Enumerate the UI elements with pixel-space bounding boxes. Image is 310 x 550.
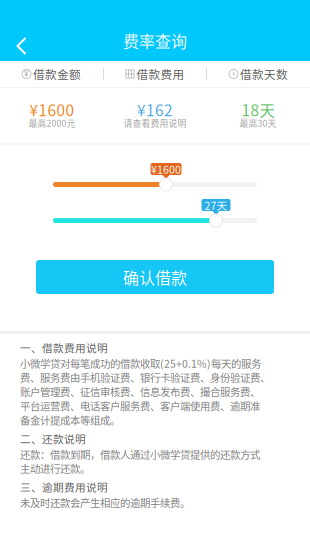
staticText: 费、服务费由手机验证费、银行卡验证费、身份验证费、 (20, 370, 270, 385)
staticText: 小微学贷对每笔成功的借款收取(25+0.1%)每天的服务 (20, 356, 261, 371)
staticText: ¥1600 (151, 161, 181, 177)
staticText: 借款天数 (240, 66, 288, 82)
staticText: 备金计提成本等组成。 (20, 412, 120, 427)
staticText: 未及时还款会产生相应的逾期手续费。 (20, 495, 190, 510)
staticText: 二、还款说明 (20, 431, 86, 446)
staticText: 借款费用 (136, 66, 184, 82)
staticText: 请查看费用说明 (123, 117, 186, 129)
staticText: 三、逾期费用说明 (20, 479, 108, 495)
staticText: 费率查询 (123, 29, 187, 52)
staticText: ¥162 (137, 98, 173, 121)
staticText: ¥1600 (29, 98, 74, 121)
staticText: ¥ (24, 69, 29, 79)
staticText: 27天 (204, 197, 227, 213)
staticText: 账户管理费、征信审核费、信息发布费、撮合服务费、 (20, 384, 260, 399)
staticText: 最高30天 (239, 117, 276, 129)
staticText: 平台运营费、电话客户服务费、客户端使用费、逾期准 (20, 398, 260, 413)
staticText: 一、借款费用说明 (20, 340, 108, 355)
button[interactable]: 确认借款 (36, 260, 274, 294)
staticText: 18天 (241, 98, 274, 121)
staticText: 借款金额 (33, 66, 81, 82)
staticText: 还款：借款到期，借款人通过小微学贷提供的还款方式 (20, 447, 260, 462)
staticText: 最高2000元 (28, 117, 75, 129)
staticText: 确认借款 (123, 265, 187, 289)
staticText: 主动进行还款。 (20, 461, 90, 476)
button[interactable]: 返回 (0, 31, 43, 61)
